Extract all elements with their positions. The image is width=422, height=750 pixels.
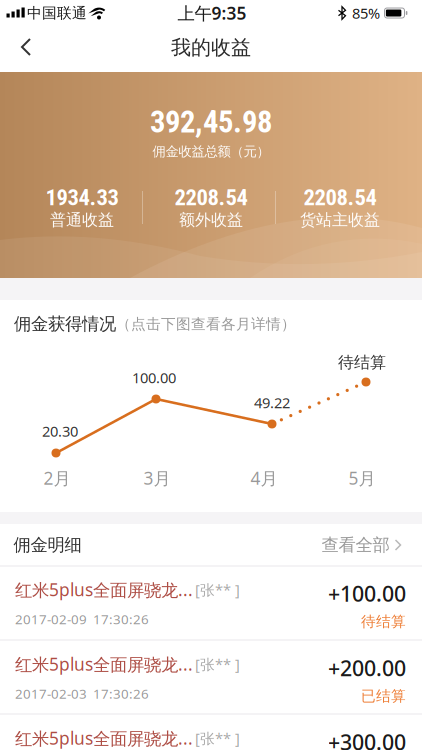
staticText: 1934.33 [45, 184, 118, 211]
staticText: 2208.54 [174, 184, 247, 211]
staticText: 2017-02-03 17:30:26 [15, 685, 149, 702]
staticText: 额外收益 [179, 210, 243, 230]
staticText: 待结算 [361, 613, 406, 631]
staticText: [张** ] [195, 728, 240, 748]
staticText: 49.22 [254, 393, 290, 412]
staticText: 普通收益 [50, 210, 114, 230]
button[interactable]: 查看各月详情 [0, 340, 422, 510]
button[interactable]: 查看全部 [321, 534, 402, 556]
staticText: 85% [352, 3, 380, 23]
staticText: +200.00 [328, 654, 406, 682]
staticText: 20.30 [42, 421, 78, 441]
staticText: +300.00 [328, 728, 406, 750]
button[interactable]: Back [4, 29, 48, 65]
staticText: +100.00 [328, 579, 406, 608]
staticText: [张** ] [195, 654, 240, 674]
staticText: 待结算 [338, 353, 386, 372]
staticText: 上午9:35 [177, 1, 246, 24]
staticText: 中国联通 [27, 4, 87, 22]
button[interactable]: 红米5plus全面屏骁龙... [0, 641, 422, 714]
staticText: 我的收益 [171, 35, 251, 60]
staticText: 已结算 [361, 687, 406, 705]
staticText: 2208.54 [303, 184, 376, 211]
staticText: 查看全部 [321, 534, 389, 556]
staticText: [张** ] [195, 580, 240, 599]
staticText: 4月 [250, 466, 277, 489]
staticText: 红米5plus全面屏骁龙... [15, 727, 193, 750]
staticText: 佣金收益总额（元） [152, 143, 269, 160]
staticText: 392,45.98 [150, 104, 272, 140]
button[interactable]: 红米5plus全面屏骁龙... [0, 715, 422, 750]
staticText: 2月 [43, 466, 70, 489]
staticText: 佣金明细 [13, 534, 81, 556]
staticText: 红米5plus全面屏骁龙... [15, 653, 193, 676]
staticText: 红米5plus全面屏骁龙... [15, 578, 193, 601]
staticText: 100.00 [132, 368, 176, 387]
staticText: （点击下图查看各月详情） [116, 315, 296, 333]
button[interactable]: 红米5plus全面屏骁龙... [0, 566, 422, 639]
staticText: 2017-02-09 17:30:26 [15, 610, 149, 628]
staticText: 佣金获得情况 [14, 313, 116, 335]
staticText: 货站主收益 [300, 210, 380, 230]
staticText: 5月 [348, 466, 375, 489]
staticText: 3月 [143, 466, 170, 489]
